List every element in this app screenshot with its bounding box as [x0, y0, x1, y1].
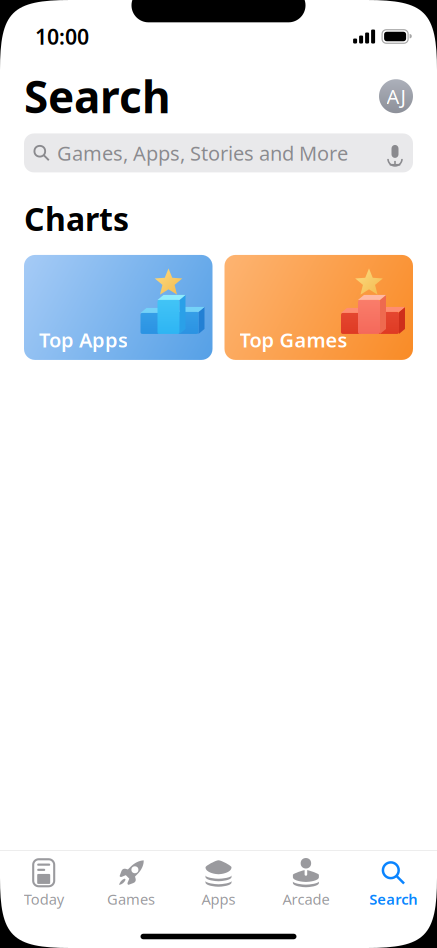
button[interactable]: Apps: [175, 852, 262, 913]
staticText: Search: [369, 889, 417, 909]
button[interactable]: Top Games: [224, 255, 413, 360]
button[interactable]: Games, Apps, Stories and More: [0, 125, 437, 172]
button[interactable]: Games: [87, 852, 175, 913]
staticText: Games, Apps, Stories and More: [57, 140, 348, 166]
staticText: 10:00: [35, 22, 89, 51]
staticText: Search: [24, 67, 171, 125]
staticText: Apps: [201, 889, 235, 909]
staticText: AJ: [386, 83, 405, 109]
button[interactable]: Today: [0, 852, 87, 913]
staticText: Games: [107, 889, 155, 909]
button[interactable]: Arcade: [262, 852, 350, 913]
staticText: Arcade: [282, 889, 329, 909]
button[interactable]: Top Apps: [24, 255, 212, 360]
button[interactable]: Account: [379, 79, 413, 113]
staticText: Today: [24, 889, 64, 909]
button[interactable]: Search: [350, 852, 437, 913]
staticText: Charts: [24, 197, 129, 240]
staticText: Top Games: [239, 326, 347, 353]
staticText: Top Apps: [39, 326, 128, 353]
